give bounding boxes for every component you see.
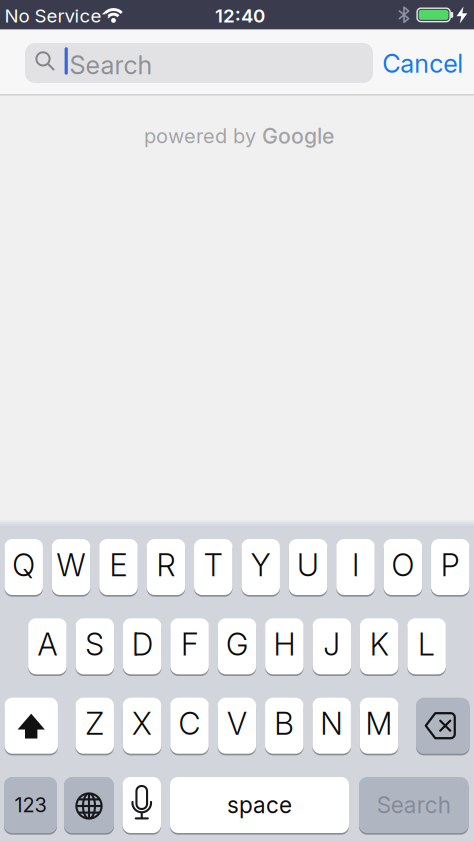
staticText: G [226,626,248,662]
button[interactable]: J [312,618,351,674]
staticText: I [352,547,359,583]
staticText: T [204,547,223,583]
button[interactable]: H [265,618,304,674]
button[interactable]: P [431,539,469,595]
button[interactable]: L [407,618,446,674]
button[interactable]: N [312,698,351,754]
button[interactable]: K [360,618,398,674]
button[interactable]: S [75,618,114,674]
staticText: 12:40 [215,5,265,27]
staticText: P [441,547,460,583]
button[interactable]: Search [25,43,373,83]
staticText: E [109,547,127,583]
button[interactable]: O [384,539,422,595]
button[interactable]: 123 [4,777,57,833]
button[interactable]: F [170,618,209,674]
button[interactable]: M [360,698,398,754]
staticText: 123 [14,793,46,817]
button[interactable]: G [218,618,256,674]
staticText: M [366,706,393,742]
button[interactable]: U [289,539,327,595]
staticText: A [37,626,57,662]
staticText: No Service [4,5,101,27]
staticText: V [227,706,247,742]
button[interactable]: Next keyboard [64,777,114,833]
button[interactable]: C [170,698,209,754]
staticText: C [178,706,200,742]
staticText: S [85,626,104,662]
button[interactable]: R [147,539,185,595]
staticText: X [132,706,152,742]
button[interactable]: B [265,698,304,754]
staticText: O [391,547,414,583]
staticText: Cancel [382,49,463,78]
staticText: F [181,626,198,662]
staticText: powered by [144,124,256,148]
staticText: W [57,547,86,583]
button[interactable]: Search [359,777,468,833]
staticText: R [156,547,175,583]
button[interactable]: T [194,539,232,595]
button[interactable]: X [123,698,161,754]
button[interactable]: W [52,539,90,595]
staticText: J [323,626,340,662]
button[interactable]: space [170,777,349,833]
button[interactable]: Q [4,539,43,595]
staticText: B [274,706,294,742]
staticText: Z [85,706,104,742]
button[interactable]: Y [241,539,280,595]
staticText: H [273,626,295,662]
staticText: N [320,706,343,742]
staticText: Search [69,50,152,80]
staticText: U [297,547,319,583]
staticText: Q [12,547,35,583]
button[interactable]: A [28,618,67,674]
button[interactable]: Z [75,698,114,754]
button[interactable]: E [99,539,138,595]
button[interactable]: Dictate [122,777,161,833]
button[interactable]: Delete [416,698,469,754]
staticText: Google [262,123,334,149]
button[interactable]: Cancel [382,49,463,78]
staticText: Search [377,792,451,818]
button[interactable]: V [218,698,256,754]
staticText: K [370,626,389,662]
button[interactable]: Shift [4,698,58,754]
button[interactable]: D [123,618,161,674]
staticText: D [132,626,153,662]
staticText: L [418,626,435,662]
button[interactable]: I [336,539,375,595]
staticText: Y [251,547,271,583]
staticText: space [227,792,292,818]
